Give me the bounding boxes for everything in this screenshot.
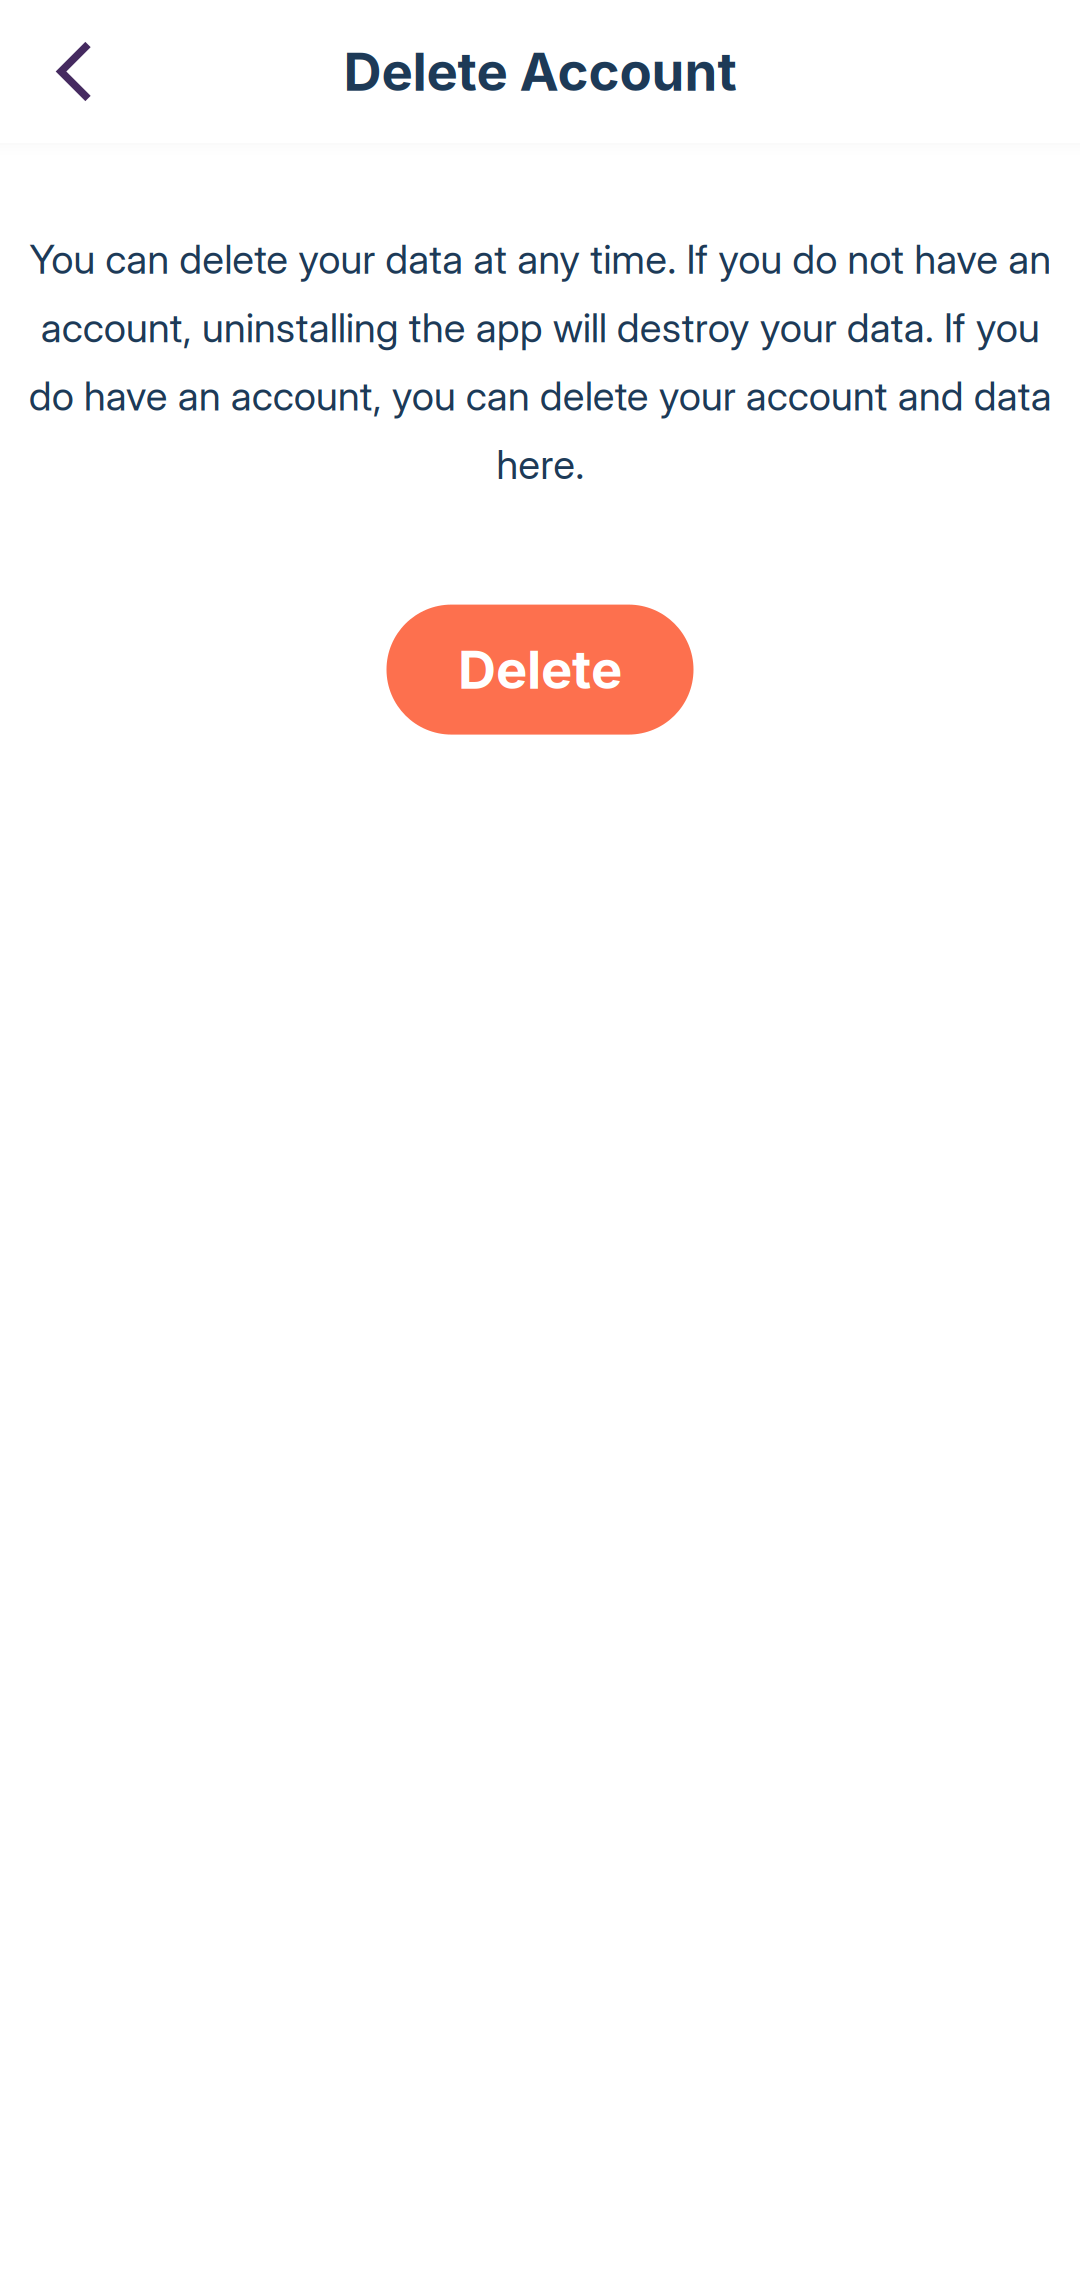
staticText: You can delete your data at any time. If… — [28, 235, 1051, 489]
staticText: Delete Account — [343, 40, 736, 103]
staticText: Delete — [458, 638, 622, 701]
button[interactable]: Delete — [386, 605, 693, 735]
button[interactable]: Back — [22, 6, 127, 136]
